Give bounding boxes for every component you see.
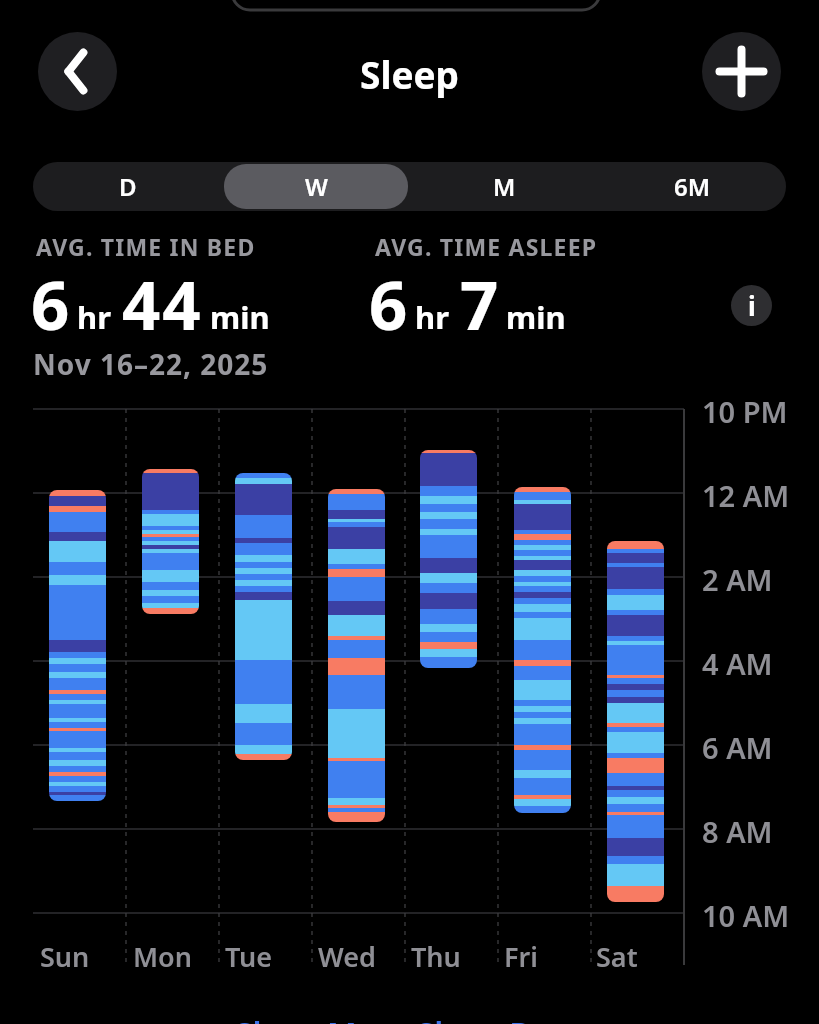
- staticText: hr: [77, 296, 112, 338]
- staticText: Show More Sleep Data: [235, 1012, 584, 1024]
- button[interactable]: D: [35, 164, 220, 209]
- staticText: i: [748, 288, 756, 323]
- staticText: hr: [415, 296, 450, 338]
- staticText: Sleep: [360, 49, 459, 99]
- button[interactable]: W: [224, 164, 408, 209]
- staticText: 7: [460, 258, 499, 349]
- button[interactable]: [38, 32, 117, 111]
- staticText: 6: [369, 258, 408, 349]
- button[interactable]: M: [412, 164, 596, 209]
- staticText: min: [210, 296, 270, 338]
- button[interactable]: 6M: [600, 164, 784, 209]
- staticText: 4 AM: [702, 644, 773, 683]
- staticText: Sun: [40, 938, 90, 975]
- staticText: Wed: [318, 938, 376, 975]
- staticText: 6: [31, 258, 70, 349]
- staticText: Mon: [133, 938, 192, 975]
- staticText: Tue: [225, 938, 273, 975]
- button[interactable]: [702, 32, 781, 111]
- staticText: 10 AM: [702, 896, 790, 935]
- staticText: Nov 16–22, 2025: [33, 345, 269, 383]
- staticText: AVG. TIME IN BED: [36, 231, 256, 262]
- staticText: AVG. TIME ASLEEP: [375, 231, 598, 262]
- button[interactable]: i: [731, 285, 772, 326]
- staticText: 2 AM: [702, 560, 773, 599]
- staticText: Sat: [596, 938, 638, 975]
- staticText: 8 AM: [702, 812, 773, 851]
- button[interactable]: Show More Sleep Data: [0, 1012, 819, 1024]
- staticText: 10 PM: [702, 392, 788, 431]
- staticText: W: [305, 170, 328, 203]
- staticText: 6M: [674, 170, 711, 203]
- staticText: 6 AM: [702, 728, 773, 767]
- staticText: M: [493, 170, 516, 203]
- staticText: 12 AM: [702, 476, 790, 515]
- staticText: D: [119, 170, 137, 203]
- staticText: 44: [122, 258, 203, 349]
- staticText: Thu: [411, 938, 461, 975]
- staticText: min: [506, 296, 566, 338]
- staticText: Fri: [504, 938, 538, 975]
